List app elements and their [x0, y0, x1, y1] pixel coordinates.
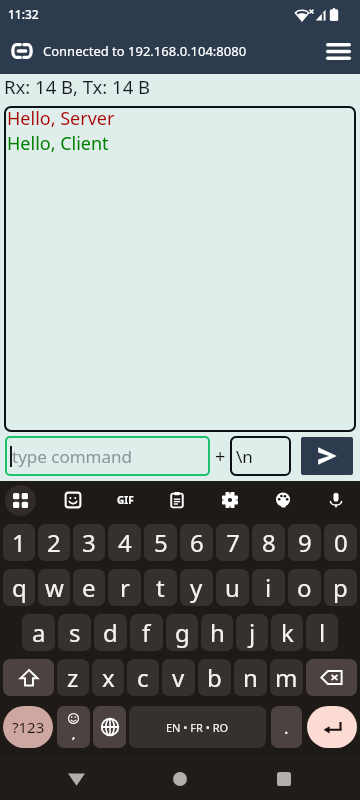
button[interactable]: 2 [38, 524, 70, 561]
staticText: 3 [82, 526, 96, 559]
staticText: 11:32 [8, 6, 39, 22]
staticText: 0 [334, 526, 348, 559]
staticText: n [243, 661, 258, 694]
button[interactable]: c [127, 659, 159, 696]
button[interactable]: b [198, 659, 231, 696]
button[interactable]: Menu [320, 33, 356, 69]
staticText: , [72, 727, 76, 742]
button[interactable]: Home [156, 757, 204, 800]
staticText: r [120, 571, 130, 604]
button[interactable]: w [38, 569, 70, 606]
button[interactable]: Connection status [4, 33, 40, 69]
button[interactable]: 9 [288, 524, 321, 561]
button[interactable]: x [92, 659, 124, 696]
button[interactable]: q [3, 569, 35, 606]
button[interactable]: g [166, 614, 198, 651]
staticText: 1 [12, 526, 26, 559]
staticText: a [32, 616, 46, 649]
staticText: + [215, 444, 226, 469]
staticText: d [103, 616, 118, 649]
button[interactable]: 4 [108, 524, 141, 561]
staticText: e [82, 571, 96, 604]
staticText: 9 [298, 526, 312, 559]
button[interactable]: type command [5, 436, 210, 476]
button[interactable]: Enter [307, 706, 357, 748]
button[interactable]: t [144, 569, 177, 606]
button[interactable]: n [234, 659, 267, 696]
button[interactable]: f [130, 614, 163, 651]
staticText: q [12, 571, 27, 604]
button[interactable]: z [57, 659, 89, 696]
staticText: GIF [117, 493, 134, 507]
button[interactable]: ?123 [3, 706, 53, 748]
button[interactable]: Emoji [57, 706, 90, 748]
staticText: b [207, 661, 222, 694]
staticText: s [69, 616, 81, 649]
button[interactable]: 0 [324, 524, 357, 561]
staticText: i [265, 571, 272, 604]
button[interactable]: j [236, 614, 268, 651]
button[interactable]: Change language [93, 706, 126, 748]
staticText: f [142, 616, 151, 649]
button[interactable]: 6 [180, 524, 213, 561]
button[interactable]: r [108, 569, 141, 606]
button[interactable]: Recent apps [260, 757, 308, 800]
button[interactable]: s [58, 614, 91, 651]
button[interactable]: . [271, 706, 302, 748]
button[interactable]: Shift [3, 659, 54, 696]
staticText: 6 [190, 526, 204, 559]
staticText: z [67, 661, 79, 694]
staticText: c [137, 661, 149, 694]
staticText: . [284, 716, 289, 739]
button[interactable]: a [22, 614, 55, 651]
staticText: y [190, 571, 203, 604]
button[interactable]: m [270, 659, 303, 696]
button[interactable]: Stickers [58, 485, 88, 515]
staticText: p [333, 571, 348, 604]
staticText: Hello, Server [7, 106, 115, 131]
staticText: t [156, 571, 165, 604]
button[interactable]: GIF [110, 485, 140, 515]
button[interactable]: Send [301, 437, 353, 475]
button[interactable]: Space [129, 706, 266, 748]
button[interactable]: l [306, 614, 338, 651]
button[interactable]: v [162, 659, 195, 696]
button[interactable]: k [271, 614, 303, 651]
button[interactable]: Clipboard [162, 485, 192, 515]
button[interactable]: Back [52, 757, 100, 800]
staticText: j [249, 616, 256, 649]
staticText: 7 [226, 526, 240, 559]
button[interactable]: u [216, 569, 249, 606]
button[interactable]: o [288, 569, 321, 606]
staticText: o [297, 571, 312, 604]
staticText: g [175, 616, 190, 649]
staticText: 5 [154, 526, 168, 559]
button[interactable]: 1 [3, 524, 35, 561]
staticText: \n [236, 445, 253, 468]
staticText: 2 [47, 526, 61, 559]
button[interactable]: i [252, 569, 285, 606]
staticText: Connected to 192.168.0.104:8080 [43, 42, 247, 60]
button[interactable]: 7 [216, 524, 249, 561]
staticText: k [281, 616, 294, 649]
button[interactable]: Backspace [306, 659, 357, 696]
button[interactable]: 8 [252, 524, 285, 561]
button[interactable]: p [324, 569, 357, 606]
button[interactable]: 3 [73, 524, 105, 561]
button[interactable]: \n [230, 436, 291, 476]
button[interactable]: Settings [215, 485, 245, 515]
button[interactable]: d [94, 614, 127, 651]
button[interactable]: h [201, 614, 233, 651]
staticText: x [102, 661, 115, 694]
button[interactable]: e [73, 569, 105, 606]
button[interactable]: Themes [268, 485, 298, 515]
staticText: 8 [262, 526, 276, 559]
staticText: ?123 [12, 717, 45, 737]
button[interactable]: y [180, 569, 213, 606]
staticText: EN • FR • RO [166, 720, 229, 735]
button[interactable]: Voice input [321, 485, 351, 515]
button[interactable]: Keyboard apps [5, 485, 36, 516]
staticText: u [225, 571, 240, 604]
staticText: type command [12, 445, 133, 468]
button[interactable]: 5 [144, 524, 177, 561]
